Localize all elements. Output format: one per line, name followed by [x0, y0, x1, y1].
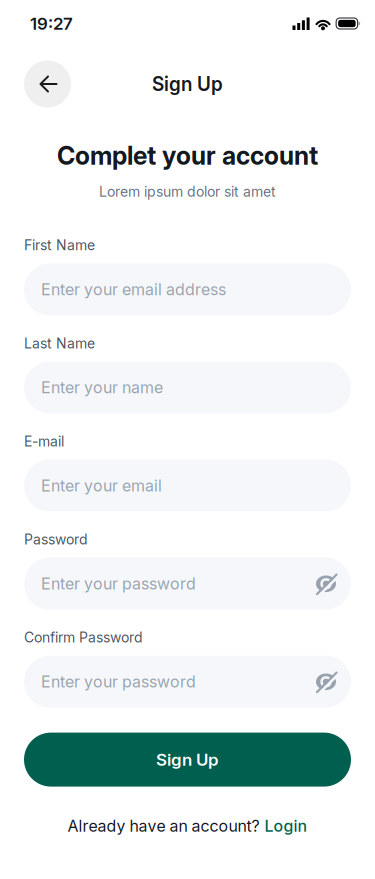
button[interactable] — [24, 60, 71, 107]
staticText: First Name — [24, 237, 95, 253]
button[interactable]: Sign Up — [24, 733, 351, 787]
staticText: Enter your email — [41, 476, 162, 495]
staticText: Enter your password — [41, 574, 196, 593]
staticText: Complet your account — [57, 141, 318, 170]
button[interactable]: Enter your email — [24, 460, 351, 512]
staticText: Already have an account? — [67, 817, 259, 835]
staticText: Password — [24, 531, 88, 548]
staticText: Sign Up — [152, 73, 223, 95]
staticText: Last Name — [24, 335, 95, 351]
button[interactable]: Enter your password — [24, 656, 351, 708]
staticText: Enter your password — [41, 672, 196, 691]
button[interactable]: Enter your email address — [24, 263, 351, 315]
button[interactable]: Enter your name — [24, 361, 351, 413]
staticText: Enter your email address — [41, 280, 226, 299]
button[interactable]: Login — [264, 817, 307, 835]
button[interactable]: Enter your password — [24, 558, 351, 610]
staticText: 19:27 — [30, 13, 73, 34]
staticText: Lorem ipsum dolor sit amet — [99, 183, 276, 200]
staticText: E-mail — [24, 433, 64, 449]
staticText: Sign Up — [156, 750, 219, 770]
staticText: Enter your name — [41, 378, 163, 397]
staticText: Login — [264, 817, 307, 835]
staticText: Confirm Password — [24, 629, 143, 646]
